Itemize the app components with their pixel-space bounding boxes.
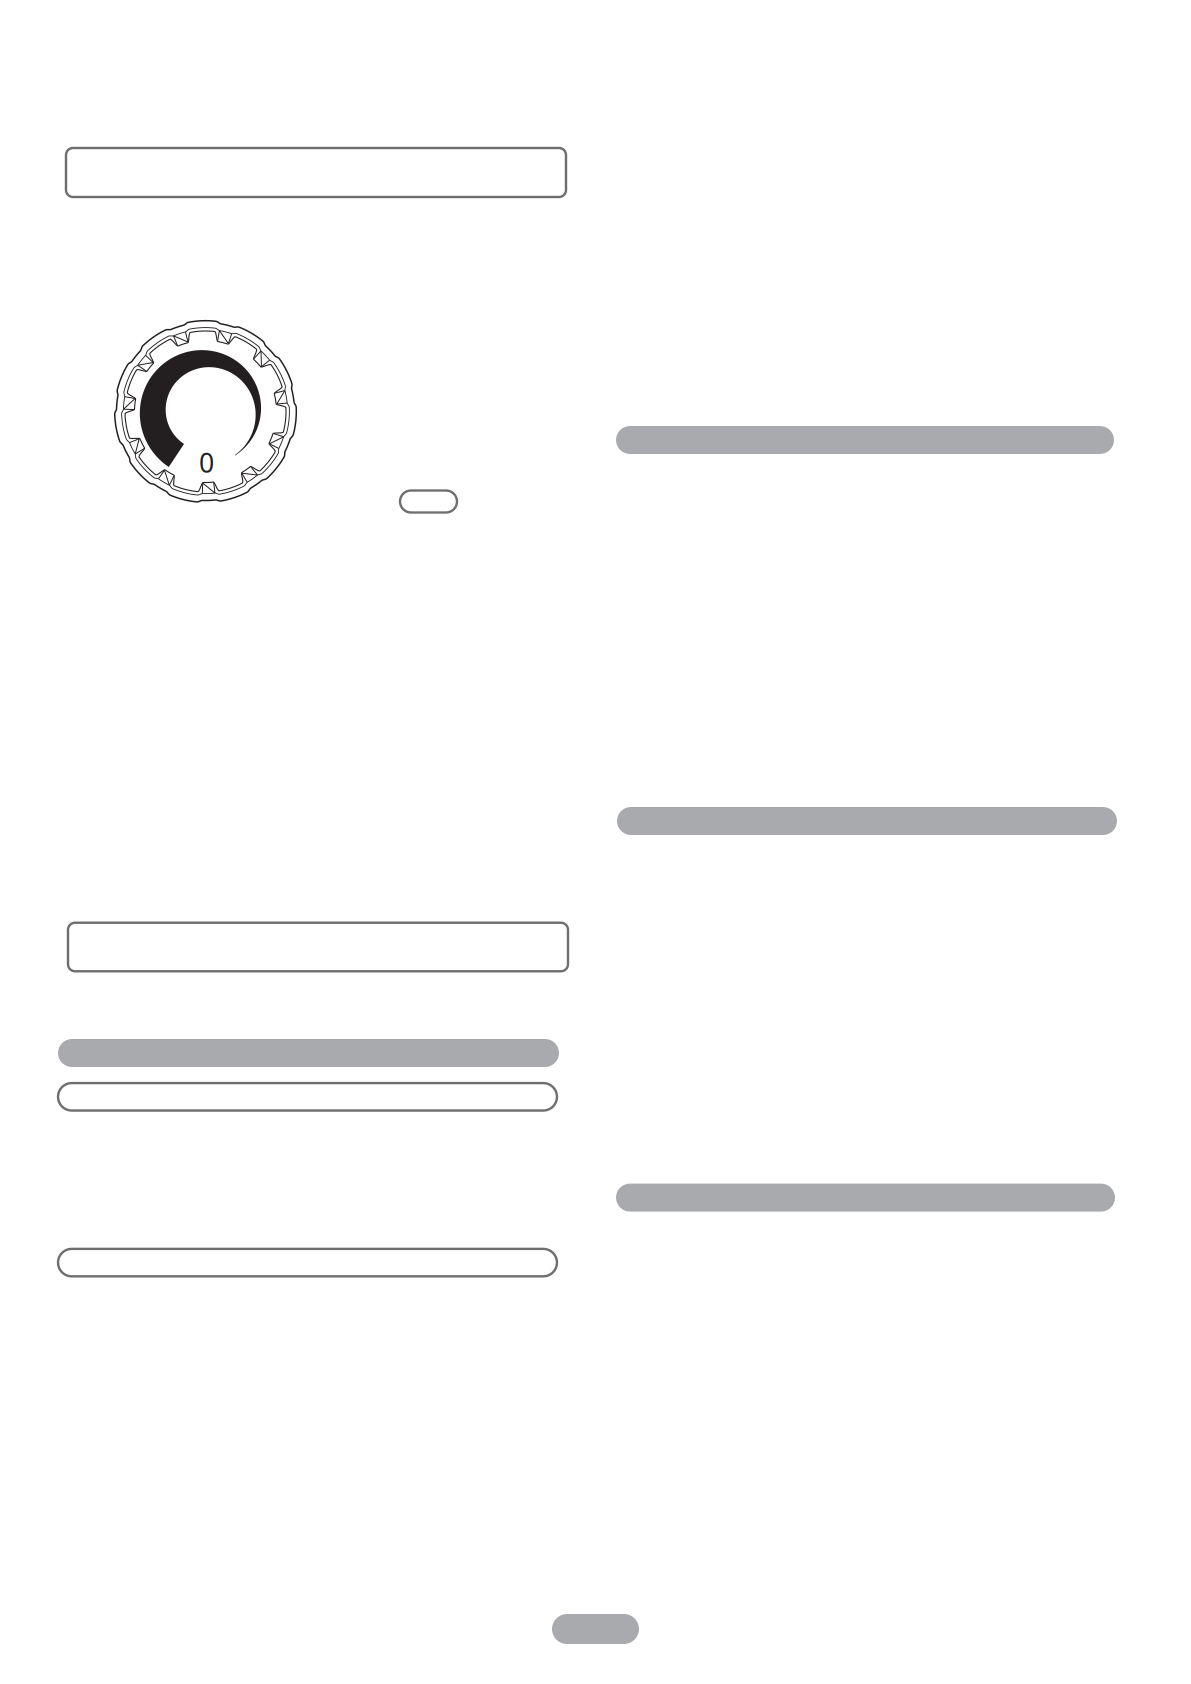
staticText: 0 [199, 445, 214, 480]
button[interactable]: Title field [66, 148, 566, 197]
button[interactable]: Option one [58, 1083, 557, 1110]
button[interactable]: Option two [58, 1249, 557, 1276]
button[interactable]: Field [68, 923, 568, 971]
button[interactable]: Callout [400, 490, 457, 512]
